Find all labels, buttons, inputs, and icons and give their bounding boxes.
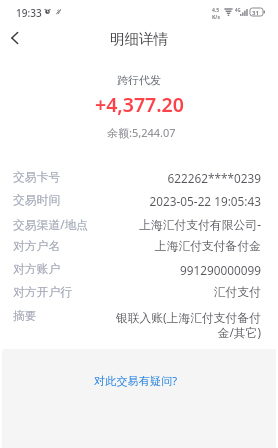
staticText: 交易卡号: [13, 170, 61, 185]
staticText: 622262****0239: [167, 170, 261, 186]
staticText: 2023-05-22 19:05:43: [149, 193, 261, 209]
staticText: 交易时间: [13, 193, 61, 208]
staticText: 对方账户: [13, 262, 61, 277]
staticText: +4,377.20: [95, 91, 184, 118]
staticText: 4.5: [212, 7, 220, 14]
staticText: 4G: [235, 7, 241, 13]
staticText: 991290000099: [180, 262, 261, 278]
staticText: 上海汇付支付备付金: [154, 239, 261, 254]
staticText: 对此交易有疑问?: [94, 373, 178, 388]
staticText: 汇付支付: [213, 285, 261, 300]
button[interactable]: 对此交易有疑问?: [86, 369, 186, 392]
staticText: 上海汇付支付有限公司-: [139, 216, 261, 232]
staticText: 摘要: [13, 309, 37, 324]
staticText: K/s: [212, 14, 220, 21]
staticText: 跨行代发: [117, 73, 161, 87]
staticText: 对方户名: [13, 239, 61, 254]
staticText: 对方开户行: [13, 285, 72, 300]
staticText: 明细详情: [110, 30, 168, 48]
staticText: 交易渠道/地点: [13, 216, 89, 232]
staticText: 19:33: [16, 6, 42, 20]
button[interactable]: Back: [0, 28, 27, 52]
staticText: 31: [252, 9, 259, 17]
staticText: 银联入账(上海汇付支付备付金/其它): [109, 309, 261, 340]
staticText: 余额:5,244.07: [107, 125, 176, 140]
